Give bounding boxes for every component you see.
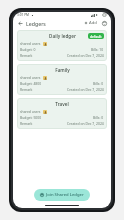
staticText: Remark — [20, 87, 33, 92]
staticText: shared users — [20, 109, 41, 114]
button[interactable]: Help — [100, 19, 108, 27]
staticText: 3:01 PM — [17, 13, 30, 17]
staticText: Bills: 10 — [91, 47, 104, 52]
button[interactable]: Family — [17, 64, 107, 95]
staticText: Family — [55, 67, 70, 73]
staticText: Budget: 0 — [20, 47, 36, 52]
button[interactable]: Back — [16, 19, 24, 27]
staticText: Created on Dec 7, 2024 — [67, 53, 104, 58]
staticText: Bills: 0 — [93, 115, 104, 120]
staticText: Budget: 5000 — [20, 115, 42, 120]
button[interactable]: Join Shared Ledger — [34, 189, 90, 201]
staticText: Join Shared Ledger — [46, 192, 84, 198]
staticText: Budget: 4800 — [20, 81, 42, 86]
staticText: Bills: 0 — [93, 81, 104, 86]
staticText: Add — [89, 20, 97, 26]
staticText: shared users — [20, 75, 41, 80]
staticText: Daily ledger — [49, 33, 76, 39]
staticText: default — [90, 34, 102, 38]
staticText: Created on Dec 7, 2024 — [67, 121, 104, 126]
button[interactable]: Daily ledger — [17, 30, 107, 61]
button[interactable]: Add — [83, 19, 98, 27]
staticText: Remark — [20, 121, 33, 126]
staticText: Travel — [55, 101, 69, 107]
staticText: Ledgers — [26, 20, 46, 27]
staticText: shared users — [20, 41, 41, 46]
button[interactable]: Travel — [17, 98, 107, 129]
staticText: Remark — [20, 53, 33, 58]
staticText: Created on Dec 7, 2024 — [67, 87, 104, 92]
